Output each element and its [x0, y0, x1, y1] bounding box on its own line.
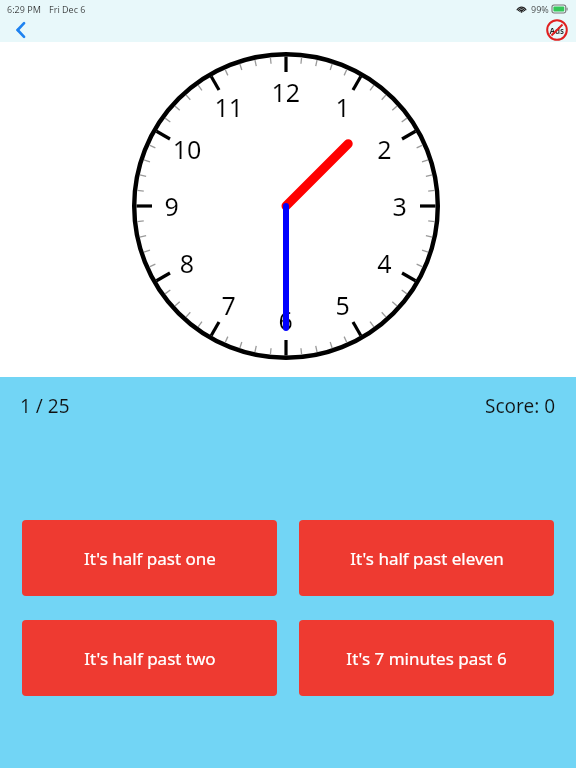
- staticText: Score: 0: [485, 393, 556, 419]
- button[interactable]: It's half past eleven: [299, 520, 554, 596]
- staticText: 99%: [531, 3, 549, 15]
- button[interactable]: Remove ads: [545, 18, 569, 42]
- staticText: It's half past eleven: [350, 547, 504, 570]
- button[interactable]: It's 7 minutes past 6: [299, 620, 554, 696]
- staticText: 1 / 25: [20, 393, 70, 419]
- staticText: Fri Dec 6: [49, 3, 86, 15]
- staticText: 6:29 PM: [7, 3, 41, 15]
- button[interactable]: It's half past one: [22, 520, 277, 596]
- button[interactable]: Back: [6, 17, 36, 42]
- staticText: It's half past one: [84, 547, 216, 570]
- button[interactable]: It's half past two: [22, 620, 277, 696]
- staticText: It's half past two: [84, 647, 216, 670]
- staticText: It's 7 minutes past 6: [346, 647, 507, 670]
